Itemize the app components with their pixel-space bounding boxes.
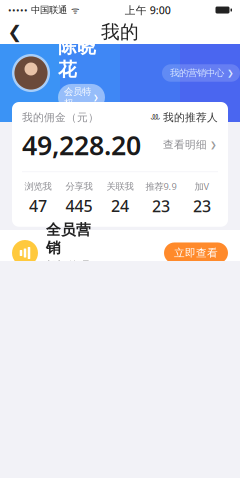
button[interactable]: 加V [181, 180, 222, 217]
button[interactable]: 浏览我 [17, 181, 58, 216]
staticText: 加V [194, 180, 209, 192]
staticText: 推荐9.9 [145, 180, 176, 192]
staticText: 全员营销 [46, 221, 91, 257]
staticText: 浏览我 [24, 181, 51, 192]
staticText: 我的营销中心 [170, 67, 224, 79]
button[interactable]: ꔛ [150, 111, 218, 124]
staticText: 查看明细 [163, 138, 207, 151]
button[interactable]: 全员营销 [0, 230, 240, 276]
button[interactable]: 会员特权 [58, 84, 105, 111]
staticText: 47 [29, 195, 47, 216]
staticText: 我的 [101, 20, 139, 43]
staticText: 我的推荐人 [163, 111, 218, 124]
staticText: 会员特权 [64, 86, 91, 109]
button[interactable]: Back [0, 20, 30, 44]
staticText: 部门管理 全员营销 [46, 259, 90, 285]
staticText: 分享我 [65, 181, 92, 192]
staticText: ••••• [8, 4, 28, 16]
button[interactable]: 我的营销中心 [162, 64, 240, 82]
staticText: 上午 9:00 [125, 3, 171, 17]
staticText: 49,228.20 [22, 127, 141, 162]
staticText: 中国联通 [28, 4, 67, 16]
button[interactable]: 关联我 [99, 181, 140, 216]
staticText: ❯ [93, 94, 99, 101]
staticText: 我的佣金（元） [22, 111, 99, 124]
staticText: 23 [152, 195, 170, 217]
staticText: 24 [111, 195, 129, 216]
button[interactable]: 查看明细 [163, 138, 217, 151]
staticText: ❮ [7, 22, 22, 42]
staticText: ❯ [210, 140, 217, 149]
button[interactable]: 推荐9.9 [140, 180, 181, 217]
staticText: ᯤ [67, 4, 80, 16]
staticText: 23 [193, 195, 211, 217]
staticText: 关联我 [106, 181, 133, 192]
button[interactable]: 分享我 [58, 181, 99, 216]
staticText: 立即查看 [174, 246, 218, 259]
staticText: ❯ [227, 68, 234, 78]
staticText: 陈晓花 [58, 35, 96, 81]
staticText: 445 [65, 195, 92, 216]
staticText: ꔛ [150, 112, 160, 123]
